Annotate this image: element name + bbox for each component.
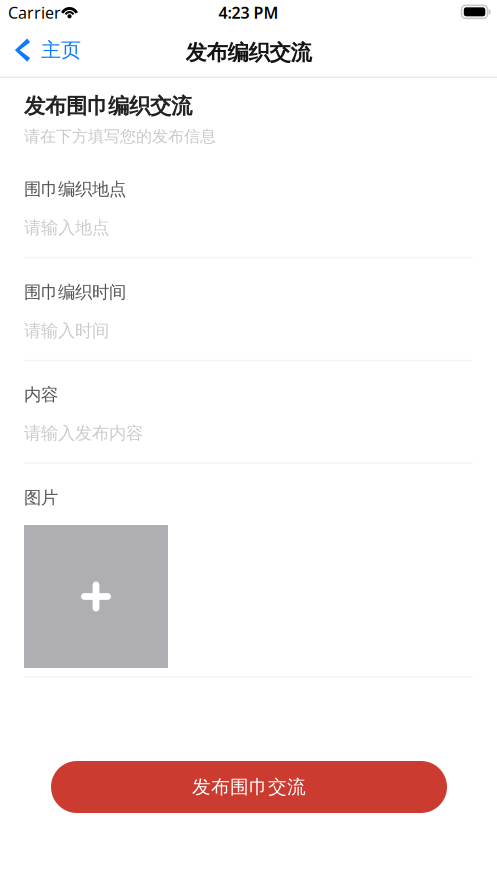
staticText: 发布围巾编织交流 xyxy=(24,93,192,119)
staticText: 围巾编织地点 xyxy=(24,178,126,200)
staticText: 4:23 PM xyxy=(218,2,278,23)
staticText: 内容 xyxy=(24,384,58,405)
staticText: Carrier xyxy=(8,2,61,23)
button[interactable]: 添加图片 xyxy=(24,525,168,668)
staticText: 图片 xyxy=(24,487,58,508)
button[interactable]: 主页 xyxy=(0,28,118,72)
staticText: 请输入发布内容 xyxy=(24,422,143,444)
staticText: 发布围巾交流 xyxy=(192,775,306,798)
staticText: 请输入地点 xyxy=(24,217,109,238)
staticText: 请在下方填写您的发布信息 xyxy=(24,126,216,146)
staticText: 主页 xyxy=(41,38,81,62)
button[interactable]: 发布围巾交流 xyxy=(51,761,447,813)
staticText: 请输入时间 xyxy=(24,320,109,341)
staticText: 围巾编织时间 xyxy=(24,281,126,303)
staticText: 发布编织交流 xyxy=(185,39,311,66)
